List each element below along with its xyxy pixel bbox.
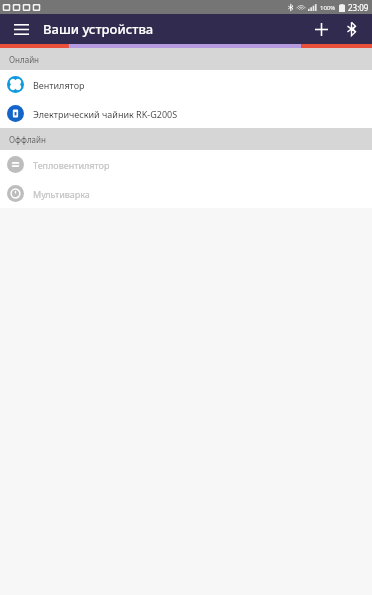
button[interactable]: Мультиварка [0,179,372,208]
button[interactable]: Вентилятор [0,70,372,99]
staticText: Вентилятор [33,79,85,91]
staticText: Электрический чайник RK-G200S [33,108,178,120]
staticText: 23:09 [348,2,369,13]
staticText: Ваши устройства [43,20,154,38]
button[interactable]: Тепловентилятор [0,150,372,179]
staticText: Онлайн [9,54,40,65]
button[interactable]: Электрический чайник RK-G200S [0,99,372,128]
staticText: Тепловентилятор [33,159,110,171]
staticText: Мультиварка [33,188,90,200]
button[interactable]: Add device [306,14,336,44]
button[interactable]: Open navigation menu [6,14,36,44]
staticText: 100% [320,4,336,12]
staticText: Оффлайн [9,134,46,145]
button[interactable]: Bluetooth [336,14,366,44]
